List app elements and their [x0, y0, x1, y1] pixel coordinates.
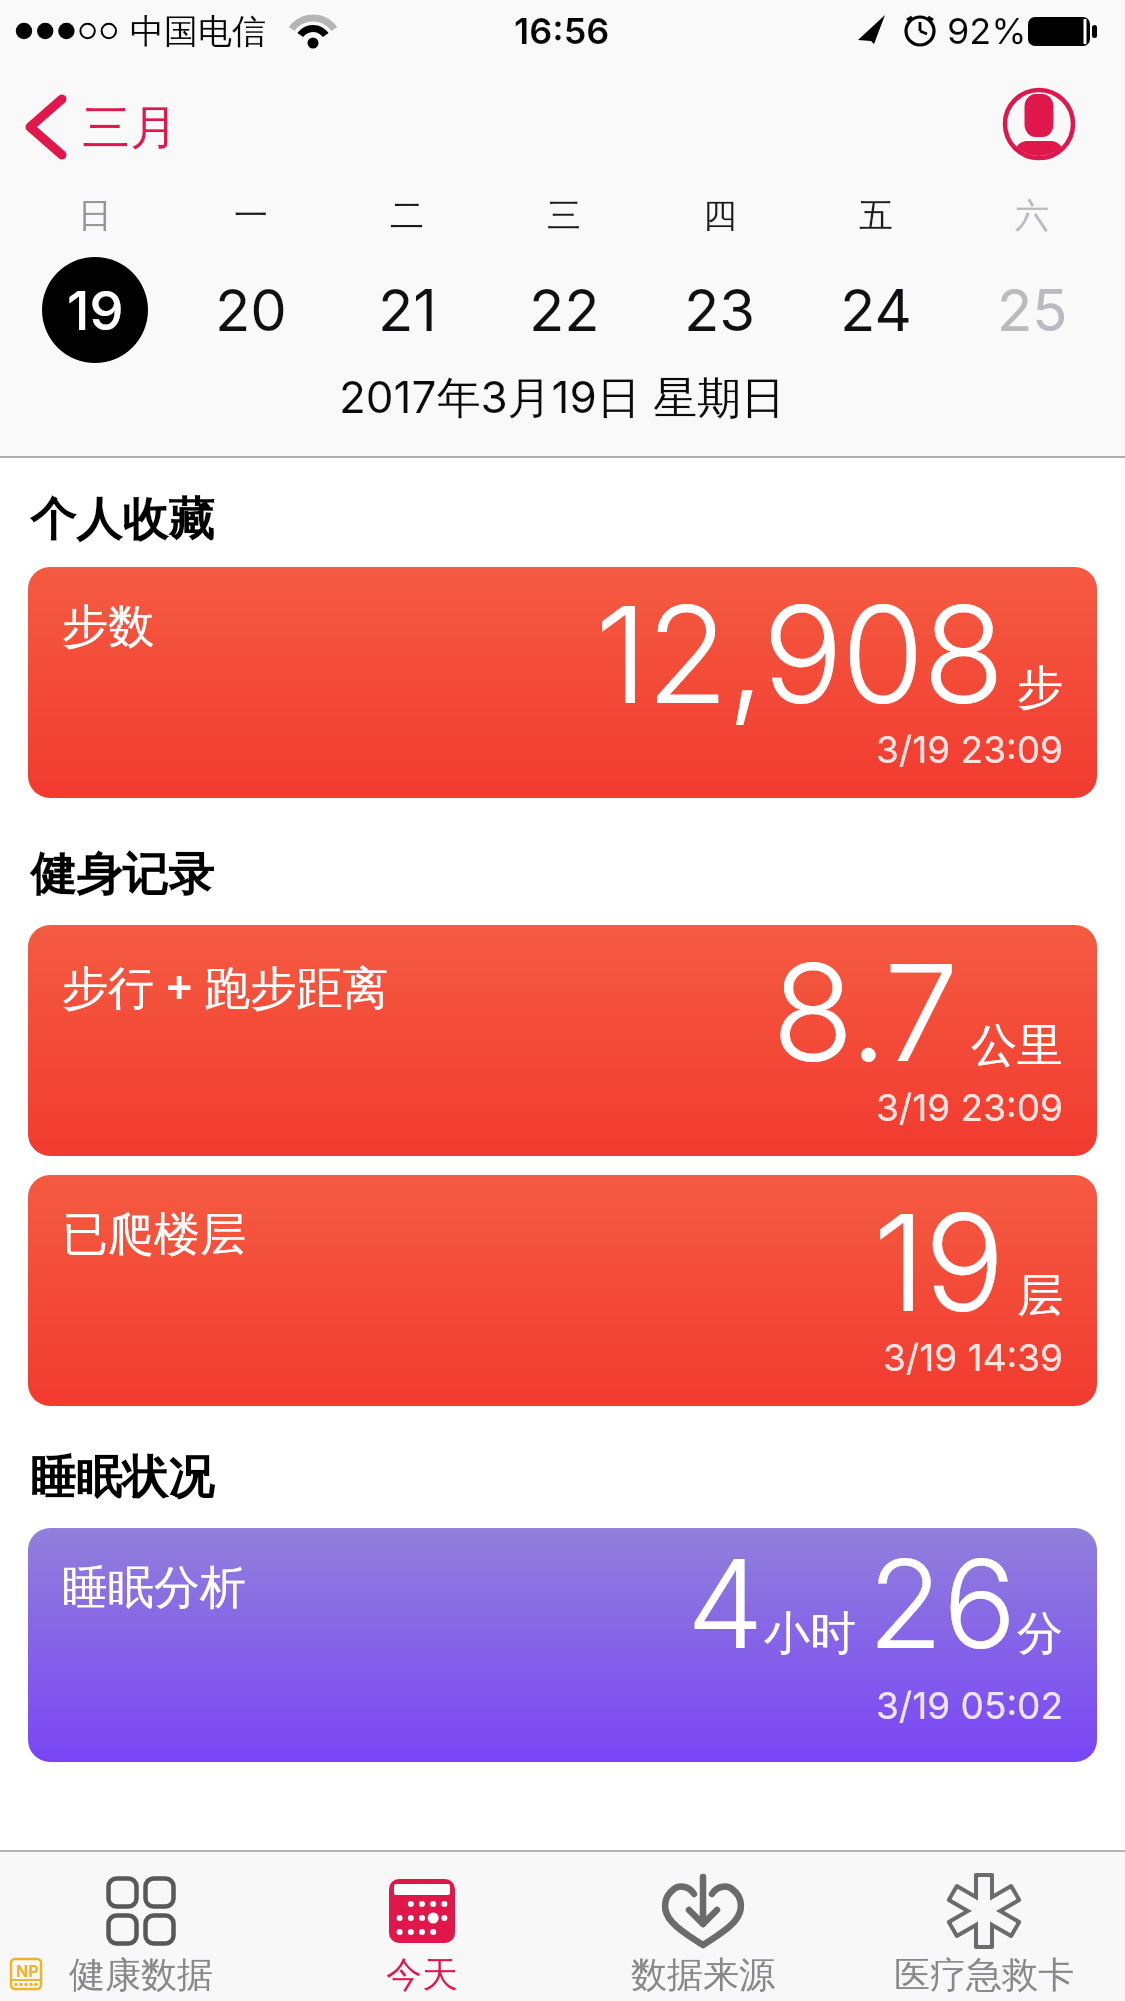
button[interactable]: 21 [342, 265, 472, 355]
staticText: 日 [78, 194, 112, 237]
button[interactable]: 医疗急救卡 [874, 1858, 1094, 2001]
staticText: 中国电信 [130, 10, 266, 53]
staticText: 20 [215, 275, 287, 345]
staticText: 12,908 [595, 573, 1004, 735]
staticText: NP [16, 1961, 39, 1980]
button[interactable] [1000, 85, 1078, 163]
staticText: 五 [859, 194, 893, 237]
staticText: 个人收藏 [30, 491, 214, 549]
staticText: 步行 + 跑步距离 [62, 955, 389, 1015]
button[interactable]: 健康数据 [31, 1858, 251, 2001]
button[interactable]: 已爬楼层 [28, 1175, 1097, 1406]
button[interactable]: 步数 [28, 567, 1097, 798]
staticText: 19 [67, 278, 124, 343]
button[interactable]: 步行 + 跑步距离 [28, 925, 1097, 1156]
staticText: 步数 [62, 598, 154, 656]
staticText: 步 [1017, 659, 1063, 717]
staticText: 已爬楼层 [62, 1206, 246, 1264]
staticText: 三月 [82, 98, 178, 158]
staticText: 3/19 14:39 [883, 1335, 1063, 1380]
button[interactable]: 19 [42, 257, 148, 363]
staticText: 公里 [971, 1017, 1063, 1075]
staticText: 一 [234, 194, 268, 237]
button[interactable]: 数据来源 [593, 1858, 813, 2001]
staticText: 16:56 [514, 9, 610, 53]
staticText: 23 [684, 275, 756, 345]
staticText: 24 [840, 275, 912, 345]
staticText: 健康数据 [69, 1952, 213, 1997]
staticText: 医疗急救卡 [894, 1952, 1074, 1997]
staticText: 层 [1017, 1267, 1063, 1325]
staticText: 健身记录 [30, 846, 214, 904]
staticText: 26 [868, 1530, 1017, 1678]
staticText: 22 [529, 275, 600, 345]
button[interactable]: 今天 [312, 1858, 532, 2001]
staticText: 今天 [386, 1952, 458, 1997]
staticText: 8.7 [772, 931, 958, 1093]
staticText: 六 [1015, 194, 1049, 237]
staticText: 2017年3月19日 星期日 [339, 370, 786, 426]
staticText: 四 [703, 194, 737, 237]
button[interactable]: 三月 [10, 85, 190, 170]
staticText: 3/19 23:09 [876, 1085, 1063, 1130]
button[interactable]: 24 [811, 265, 941, 355]
button[interactable]: 20 [186, 265, 316, 355]
staticText: 3/19 05:02 [876, 1683, 1063, 1728]
staticText: 3/19 23:09 [876, 727, 1063, 772]
button[interactable]: 睡眠分析 [28, 1528, 1097, 1762]
button[interactable]: 22 [499, 265, 629, 355]
staticText: 小时 [764, 1600, 868, 1663]
button[interactable]: 23 [655, 265, 785, 355]
button[interactable]: 25 [967, 265, 1097, 355]
staticText: 三 [547, 194, 581, 237]
staticText: 二 [390, 194, 424, 237]
staticText: 睡眠分析 [62, 1559, 246, 1617]
staticText: 92% [947, 9, 1027, 53]
staticText: 数据来源 [631, 1952, 775, 1997]
staticText: 4 [687, 1530, 764, 1678]
staticText: 分 [1017, 1605, 1063, 1663]
staticText: 25 [997, 275, 1068, 345]
staticText: 21 [378, 275, 437, 345]
staticText: 19 [873, 1181, 1004, 1343]
staticText: 睡眠状况 [30, 1449, 214, 1507]
